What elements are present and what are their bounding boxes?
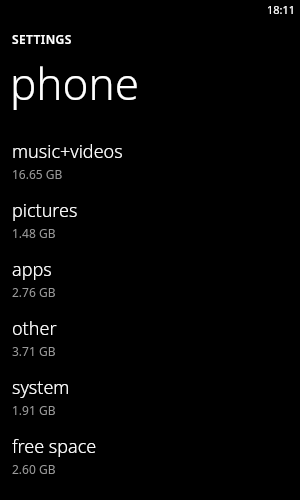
staticText: 18:11 [266,2,295,17]
staticText: 2.76 GB [12,284,56,300]
staticText: 16.65 GB [12,166,63,182]
staticText: system [12,375,70,400]
staticText: free space [12,434,97,459]
staticText: 1.91 GB [12,402,56,418]
staticText: pictures [12,198,78,223]
button[interactable]: free space [0,430,300,489]
staticText: 3.71 GB [12,343,56,359]
staticText: music+videos [12,139,123,164]
button[interactable]: pictures [0,194,300,253]
staticText: other [12,316,57,341]
button[interactable]: apps [0,253,300,312]
staticText: SETTINGS [12,31,72,47]
staticText: phone [10,53,139,113]
button[interactable]: music+videos [0,135,300,194]
staticText: 1.48 GB [12,225,56,241]
staticText: apps [12,257,52,282]
button[interactable]: other [0,312,300,371]
staticText: 2.60 GB [12,461,56,477]
button[interactable]: system [0,371,300,430]
